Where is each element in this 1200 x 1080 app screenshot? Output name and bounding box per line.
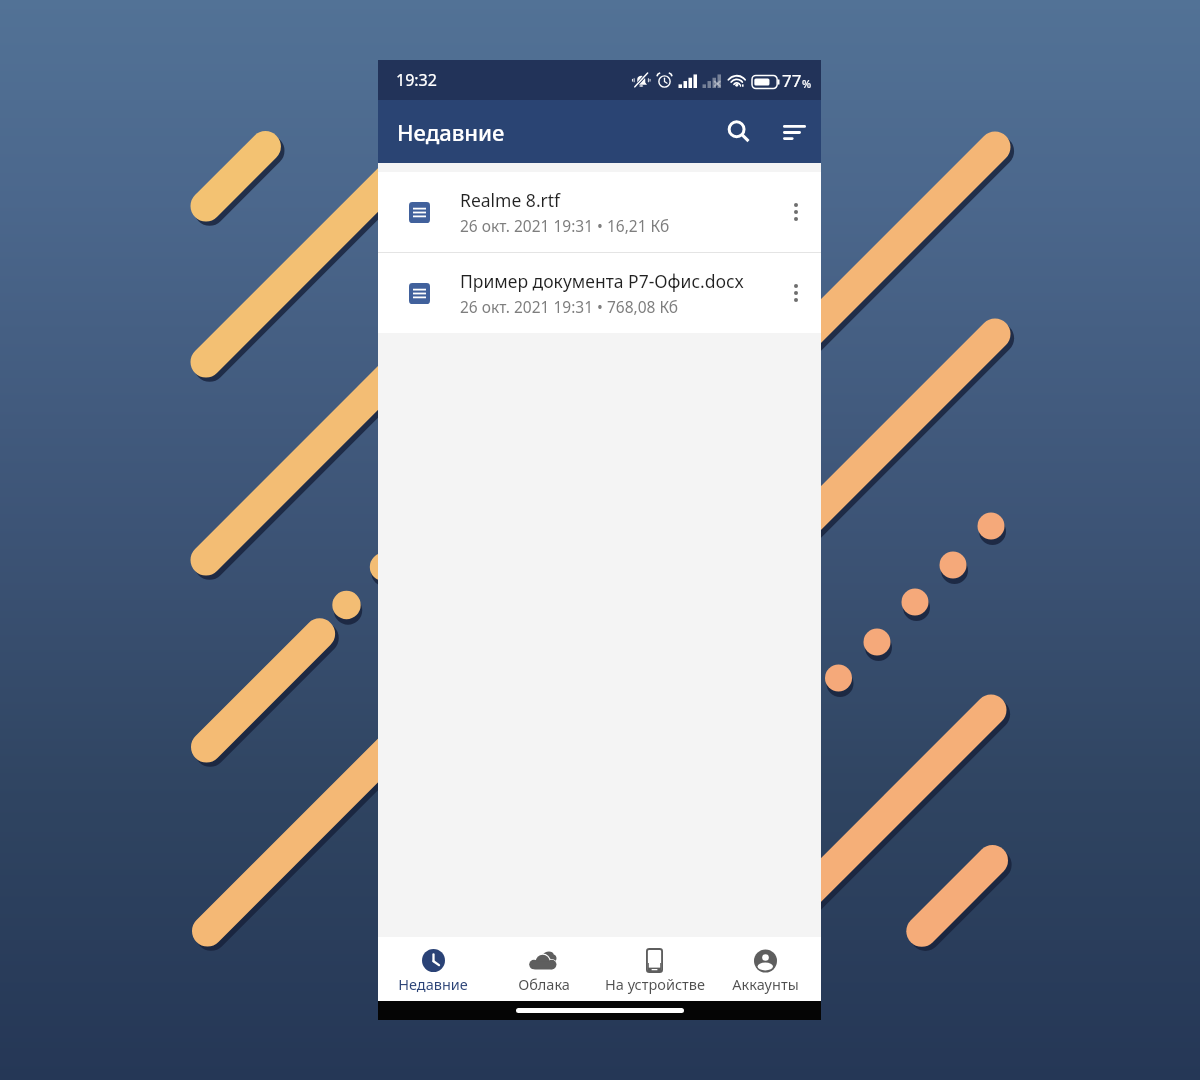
staticText: 77: [782, 69, 802, 92]
staticText: Недавние: [397, 117, 505, 147]
button[interactable]: Пример документа Р7-Офис.docx: [378, 253, 821, 333]
staticText: На устройстве: [605, 974, 705, 994]
button[interactable]: Недавние: [378, 937, 488, 1001]
button[interactable]: More options: [774, 271, 818, 315]
staticText: 26 окт. 2021 19:31 • 16,21 Кб: [460, 215, 670, 236]
staticText: Пример документа Р7-Офис.docx: [460, 269, 744, 293]
staticText: Аккаунты: [732, 974, 799, 994]
button[interactable]: More options: [774, 190, 818, 234]
staticText: 26 окт. 2021 19:31 • 768,08 Кб: [460, 296, 679, 317]
staticText: 19:32: [396, 69, 437, 91]
staticText: %: [802, 76, 812, 91]
staticText: Realme 8.rtf: [460, 188, 561, 212]
button[interactable]: Sort: [770, 108, 818, 156]
button[interactable]: Search: [715, 108, 763, 156]
staticText: Облака: [518, 974, 570, 994]
button[interactable]: На устройстве: [599, 937, 710, 1001]
button[interactable]: Облака: [488, 937, 599, 1001]
button[interactable]: Realme 8.rtf: [378, 172, 821, 252]
button[interactable]: Аккаунты: [710, 937, 821, 1001]
staticText: Недавние: [398, 974, 468, 994]
